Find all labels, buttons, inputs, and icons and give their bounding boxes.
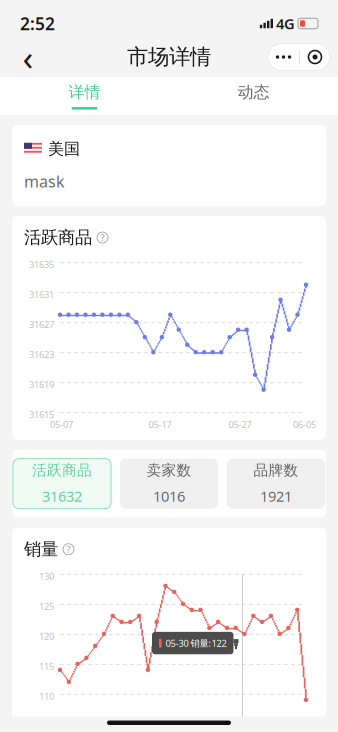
staticText: 31635 [29,258,54,271]
staticText: 05-07 [50,418,73,431]
button[interactable]: 动态 [169,77,338,115]
staticText: 31631 [29,288,54,301]
staticText: 市场详情 [127,44,211,70]
staticText: 活跃商品 [32,461,92,479]
staticText: ? [100,231,104,244]
staticText: 1921 [260,486,292,506]
staticText: 详情 [68,82,100,102]
staticText: 品牌数 [253,461,298,479]
staticText: 1016 [153,486,185,506]
staticText: 125 [39,600,54,612]
staticText: 31632 [42,486,82,506]
staticText: 31615 [29,408,54,421]
button[interactable]: More options [268,43,330,70]
button[interactable]: Back [8,40,48,74]
staticText: 05-17 [148,418,171,431]
staticText: 05-30 销量:122 [165,637,226,649]
button[interactable]: 卖家数 [120,459,218,509]
staticText: 活跃商品 [24,227,92,248]
staticText: 06-05 [293,418,316,431]
staticText: ? [66,543,70,555]
staticText: 110 [39,690,54,702]
staticText: 115 [39,660,54,672]
staticText: 05-27 [228,418,251,431]
staticText: 卖家数 [146,461,191,479]
staticText: 2:52 [20,12,55,35]
staticText: 动态 [237,82,269,102]
button[interactable]: 品牌数 [227,459,325,509]
staticText: 31619 [29,378,54,391]
staticText: 销量 [24,539,58,560]
staticText: 130 [39,570,54,582]
staticText: 31627 [29,318,54,331]
staticText: 美国 [48,139,80,159]
staticText: 4G [276,14,295,33]
button[interactable]: 详情 [0,77,169,115]
button[interactable]: 活跃商品 [13,459,111,509]
staticText: 31623 [29,348,54,361]
staticText: ‹ [22,34,33,80]
staticText: mask [24,171,65,192]
staticText: 120 [39,630,54,642]
